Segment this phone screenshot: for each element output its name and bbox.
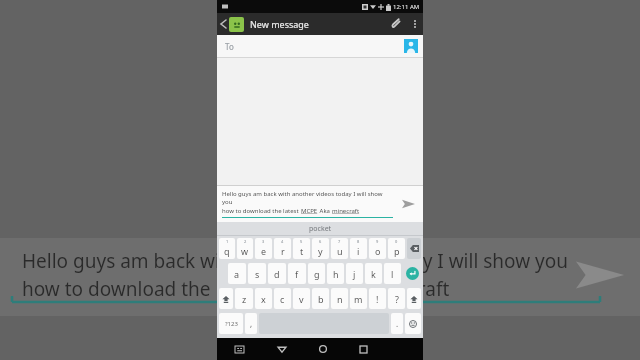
staticText: 9	[376, 239, 379, 244]
button[interactable]: Add recipient from contacts	[403, 38, 419, 54]
button[interactable]: h	[327, 263, 344, 284]
button[interactable]: Shift	[219, 288, 233, 309]
button[interactable]: 6	[312, 238, 329, 259]
button[interactable]: z	[235, 288, 253, 309]
button[interactable]: ?	[388, 288, 405, 309]
staticText: minecraft	[332, 207, 360, 215]
button[interactable]: Hello guys am back with another videos t…	[222, 190, 393, 218]
button[interactable]: To	[217, 35, 423, 57]
button[interactable]: Send	[398, 194, 418, 214]
button[interactable]: g	[308, 263, 325, 284]
staticText: z	[242, 293, 247, 305]
staticText: s	[255, 268, 260, 280]
button[interactable]: l	[384, 263, 401, 284]
button[interactable]: d	[268, 263, 286, 284]
button[interactable]: s	[248, 263, 266, 284]
button[interactable]: 0	[388, 238, 405, 259]
staticText: k	[371, 268, 376, 280]
staticText: ?123	[225, 320, 238, 328]
button[interactable]: x	[255, 288, 272, 309]
staticText: ?	[395, 293, 399, 305]
staticText: t	[300, 245, 304, 257]
staticText: x	[261, 293, 266, 305]
staticText: how to download the latest	[222, 207, 301, 215]
staticText: To	[225, 41, 234, 52]
staticText: .	[396, 318, 399, 329]
button[interactable]: Backspace	[407, 238, 421, 259]
staticText: o	[375, 245, 381, 257]
staticText: y	[318, 245, 323, 257]
staticText: d	[274, 268, 280, 280]
button[interactable]: pocket	[217, 222, 423, 235]
staticText: pocket	[309, 224, 332, 234]
staticText: f	[295, 268, 299, 280]
button[interactable]: 7	[331, 238, 348, 259]
button[interactable]: Enter	[406, 267, 419, 280]
button[interactable]: a	[228, 263, 246, 284]
button[interactable]: j	[346, 263, 363, 284]
staticText: Hello guys am back with another videos t…	[222, 190, 393, 206]
staticText: r	[281, 245, 285, 257]
staticText: 1	[226, 239, 229, 244]
staticText: l	[391, 268, 394, 280]
button[interactable]: 8	[350, 238, 367, 259]
button[interactable]: .	[391, 313, 403, 334]
button[interactable]: Recent apps	[343, 338, 383, 360]
staticText: w	[241, 245, 249, 257]
button[interactable]: 5	[293, 238, 310, 259]
button[interactable]: Back	[261, 338, 303, 360]
staticText: 4	[281, 239, 284, 244]
staticText: ,	[250, 318, 253, 329]
button[interactable]: ?123	[219, 313, 243, 334]
staticText: 7	[338, 239, 341, 244]
staticText: e	[261, 245, 267, 257]
staticText: Hello guys am back with another videos t…	[22, 248, 569, 274]
staticText: 6	[319, 239, 322, 244]
button[interactable]: 4	[274, 238, 291, 259]
staticText: p	[394, 245, 400, 257]
staticText: New message	[250, 18, 309, 30]
button[interactable]: 2	[237, 238, 253, 259]
button[interactable]: ,	[245, 313, 257, 334]
button[interactable]: Hide keyboard	[217, 338, 261, 360]
button[interactable]: Home	[303, 338, 343, 360]
button[interactable]: 9	[369, 238, 386, 259]
button[interactable]: Back	[217, 13, 229, 35]
staticText: m	[354, 293, 363, 305]
staticText: j	[353, 268, 356, 280]
staticText: 5	[300, 239, 303, 244]
staticText: Aka	[318, 207, 332, 215]
button[interactable]: Shift right	[407, 288, 421, 309]
staticText: h	[333, 268, 339, 280]
button[interactable]: 1	[219, 238, 235, 259]
staticText: 12:11 AM	[393, 3, 420, 11]
button[interactable]: k	[365, 263, 382, 284]
staticText: q	[224, 245, 230, 257]
button[interactable]: Emoji	[405, 313, 421, 334]
button[interactable]: m	[350, 288, 367, 309]
staticText: 2	[244, 239, 247, 244]
staticText: v	[299, 293, 304, 305]
button[interactable]: v	[293, 288, 310, 309]
button[interactable]: f	[288, 263, 306, 284]
staticText: 8	[357, 239, 360, 244]
button[interactable]: n	[331, 288, 348, 309]
staticText: 0	[395, 239, 398, 244]
staticText: !	[376, 293, 379, 305]
staticText: how to download the latest MCPE Aka mine…	[22, 276, 450, 302]
staticText: n	[337, 293, 343, 305]
staticText: g	[314, 268, 320, 280]
button[interactable]: Attach	[385, 13, 407, 35]
button[interactable]: c	[274, 288, 291, 309]
button[interactable]: 3	[255, 238, 272, 259]
button[interactable]: b	[312, 288, 329, 309]
button[interactable]: !	[369, 288, 386, 309]
staticText: b	[318, 293, 324, 305]
button[interactable]: More options	[407, 13, 423, 35]
staticText: c	[280, 293, 285, 305]
staticText: u	[337, 245, 343, 257]
staticText: a	[234, 268, 240, 280]
staticText: 3	[262, 239, 265, 244]
staticText: MCPE	[301, 207, 318, 215]
